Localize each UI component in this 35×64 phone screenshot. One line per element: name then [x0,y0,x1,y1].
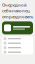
staticText: Очередной себя наконец отпраздновать [2,2,33,19]
button[interactable] [2,45,33,50]
button[interactable] [2,50,33,54]
button[interactable] [2,21,33,34]
button[interactable] [2,41,33,45]
button[interactable] [2,36,33,41]
